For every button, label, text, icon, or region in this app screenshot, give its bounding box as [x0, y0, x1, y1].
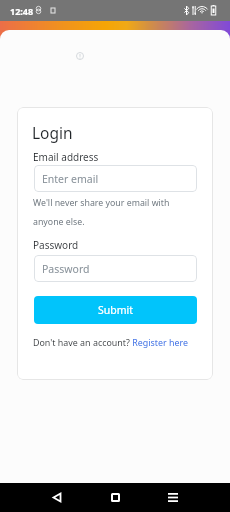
staticText: Submit	[98, 303, 134, 317]
button[interactable]: Don't have an account? Register here	[33, 336, 188, 348]
button[interactable]: Information	[72, 48, 88, 64]
button[interactable]: Back	[43, 488, 71, 507]
staticText: Password	[33, 238, 79, 252]
button[interactable]: Submit	[34, 296, 197, 324]
staticText: Password	[42, 262, 90, 276]
button[interactable]: Home	[101, 488, 129, 507]
staticText: We'll never share your email with anyone…	[33, 197, 199, 227]
staticText: Email address	[33, 150, 99, 164]
staticText: Login	[32, 122, 73, 143]
staticText: 12:48	[10, 5, 34, 17]
staticText: Enter email	[42, 172, 99, 186]
button[interactable]: Password	[34, 255, 197, 282]
button[interactable]: Recent apps	[159, 488, 187, 507]
button[interactable]: Enter email	[34, 165, 197, 192]
